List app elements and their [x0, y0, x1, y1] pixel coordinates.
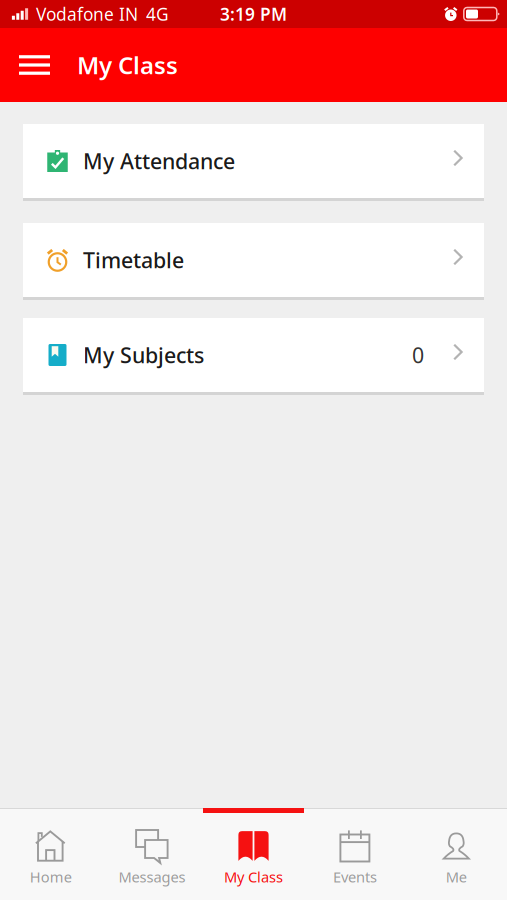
staticText: Timetable [83, 246, 184, 274]
button[interactable]: Home [0, 809, 101, 900]
button[interactable]: Me [406, 809, 507, 900]
staticText: 0 [412, 341, 424, 369]
staticText: Home [30, 867, 72, 886]
button[interactable]: Menu [9, 36, 60, 94]
staticText: Messages [119, 867, 186, 886]
staticText: My Attendance [83, 147, 235, 175]
staticText: 3:19 PM [220, 2, 287, 25]
staticText: My Subjects [83, 341, 204, 369]
button[interactable]: My Class [203, 809, 304, 900]
staticText: My Class [77, 49, 178, 81]
staticText: Vodafone IN [36, 2, 138, 25]
button[interactable]: Events [304, 809, 406, 900]
staticText: My Class [224, 867, 283, 886]
button[interactable]: Timetable [23, 223, 484, 300]
staticText: Events [333, 867, 377, 886]
button[interactable]: My Attendance [23, 124, 484, 201]
staticText: Me [446, 867, 467, 886]
staticText: 4G [146, 2, 169, 25]
button[interactable]: My Subjects [23, 318, 484, 395]
button[interactable]: Messages [101, 809, 203, 900]
